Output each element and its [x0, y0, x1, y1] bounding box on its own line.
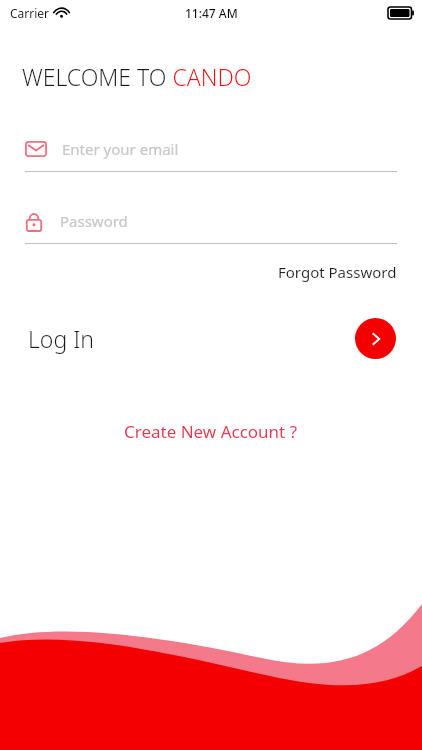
button[interactable]: Password	[25, 204, 397, 238]
staticText: Forgot Password	[278, 262, 397, 282]
button[interactable]: Log in	[355, 318, 396, 359]
button[interactable]: Create New Account ?	[116, 412, 306, 451]
staticText: 11:47 AM	[185, 5, 238, 21]
button[interactable]: Forgot Password	[274, 258, 401, 286]
staticText: WELCOME TO CANDO	[22, 61, 252, 92]
staticText: Enter your email	[62, 139, 179, 159]
staticText: Password	[60, 211, 128, 231]
button[interactable]: Enter your email	[25, 132, 397, 166]
staticText: Create New Account ?	[124, 420, 298, 443]
button[interactable]: Log In	[28, 323, 95, 354]
staticText: Carrier	[10, 5, 50, 21]
